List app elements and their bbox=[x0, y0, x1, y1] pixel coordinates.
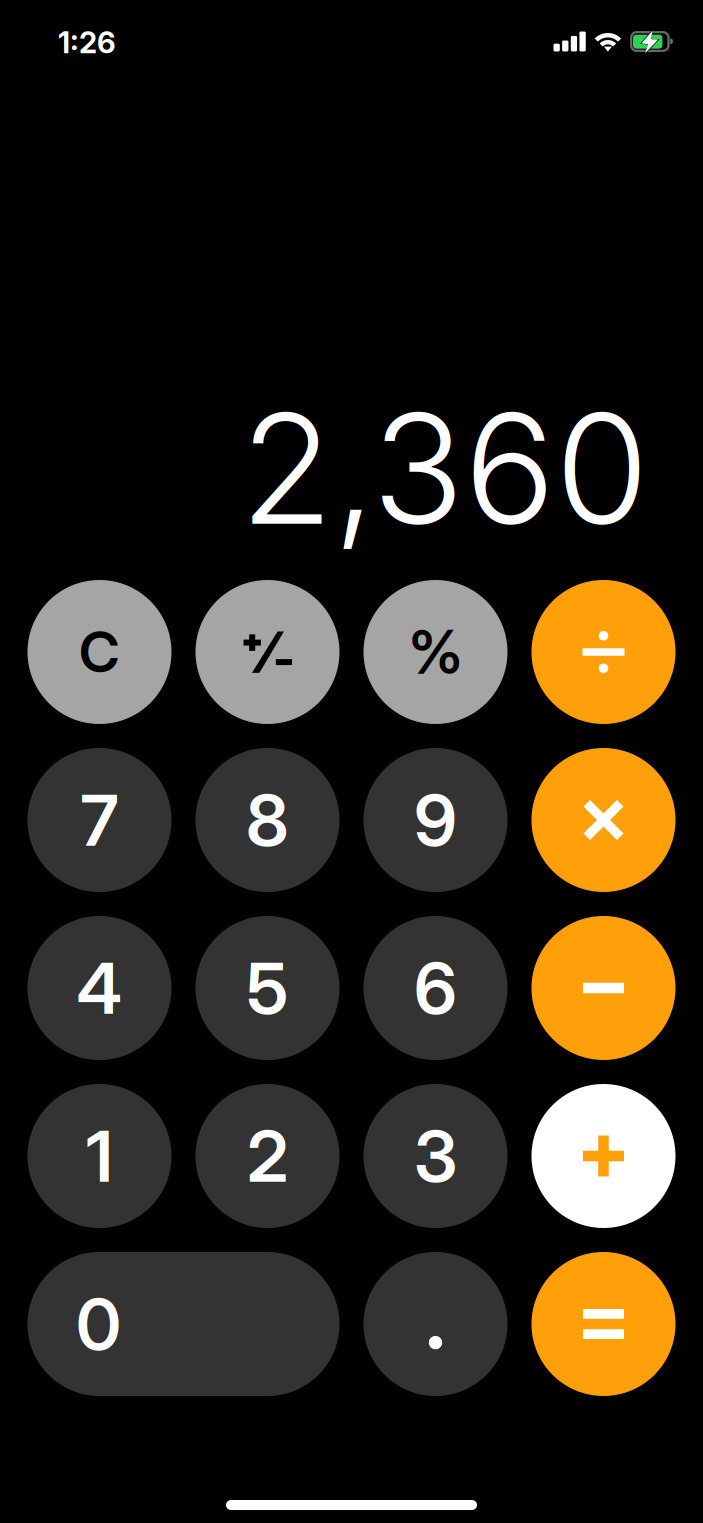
staticText: 3 bbox=[414, 1113, 457, 1199]
staticText: 5 bbox=[246, 945, 288, 1031]
button[interactable]: 2 bbox=[195, 1084, 339, 1228]
button[interactable]: Equals bbox=[531, 1252, 675, 1396]
button[interactable]: Plus bbox=[531, 1084, 675, 1228]
button[interactable]: Decimal point bbox=[363, 1252, 507, 1396]
staticText: 4 bbox=[76, 945, 122, 1031]
staticText: 1:26 bbox=[58, 25, 116, 60]
staticText: 8 bbox=[246, 777, 289, 863]
button[interactable]: 7 bbox=[27, 748, 171, 892]
button[interactable]: 3 bbox=[363, 1084, 507, 1228]
button[interactable]: Clear bbox=[27, 580, 171, 724]
button[interactable]: 0 bbox=[27, 1252, 339, 1396]
button[interactable]: 8 bbox=[195, 748, 339, 892]
button[interactable]: Minus bbox=[531, 916, 675, 1060]
button[interactable]: 5 bbox=[195, 916, 339, 1060]
staticText: 1 bbox=[86, 1113, 113, 1199]
staticText: 2,360 bbox=[240, 377, 649, 560]
staticText: 2 bbox=[247, 1113, 288, 1199]
staticText: 6 bbox=[414, 945, 457, 1031]
staticText: 0 bbox=[76, 1281, 121, 1367]
button[interactable]: 6 bbox=[363, 916, 507, 1060]
button[interactable]: 1 bbox=[27, 1084, 171, 1228]
button[interactable]: Divide bbox=[531, 580, 675, 724]
button[interactable]: Multiply bbox=[531, 748, 675, 892]
button[interactable]: Plus minus bbox=[195, 580, 339, 724]
button[interactable]: 4 bbox=[27, 916, 171, 1060]
button[interactable]: 9 bbox=[363, 748, 507, 892]
staticText: % bbox=[408, 616, 462, 688]
staticText: C bbox=[79, 618, 120, 686]
staticText: 9 bbox=[414, 777, 457, 863]
staticText: 7 bbox=[80, 777, 118, 863]
button[interactable]: Percent bbox=[363, 580, 507, 724]
